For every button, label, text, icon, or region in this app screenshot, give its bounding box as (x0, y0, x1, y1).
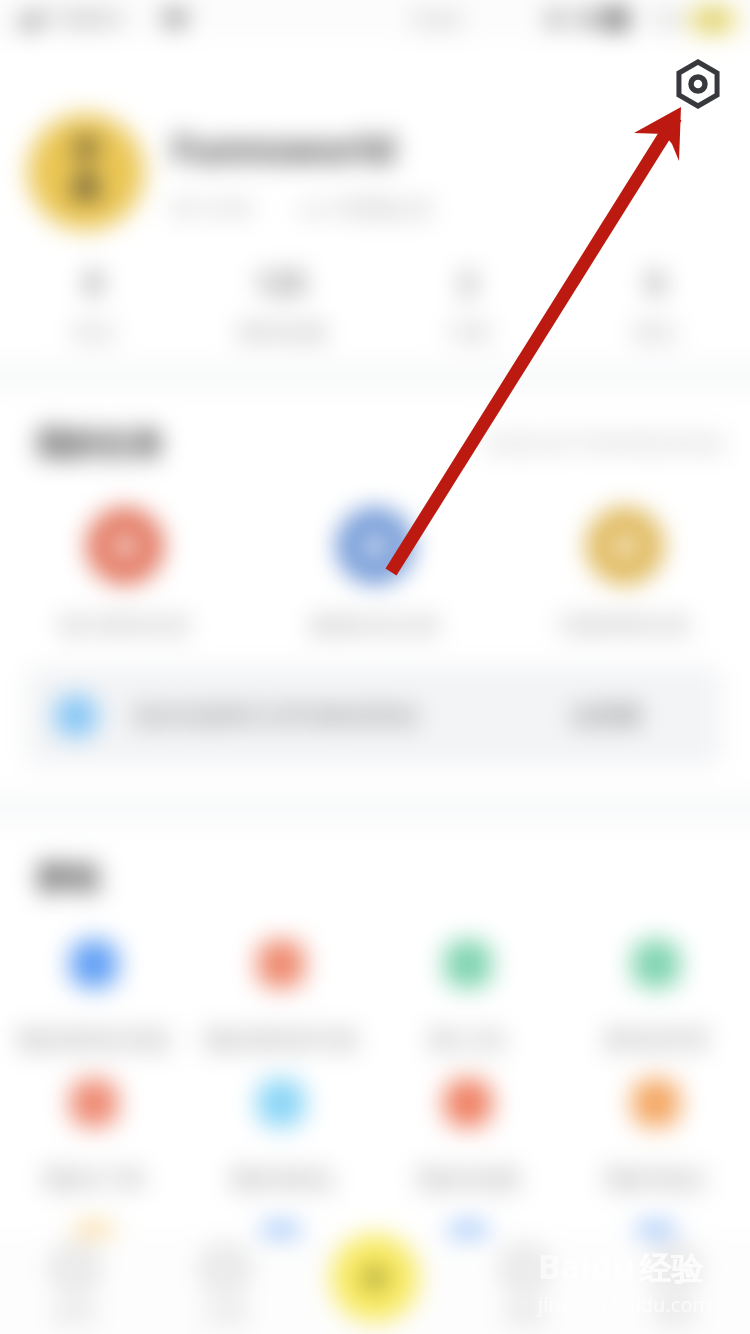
staticText: 我的优惠 (416, 1163, 520, 1196)
button[interactable]: 我的 (600, 1248, 750, 1328)
staticText: 群公告 (429, 1024, 507, 1057)
staticText: Baidu (538, 1243, 635, 1289)
staticText: 意见反馈 (416, 1308, 520, 1334)
staticText: 邀请好友任务 (309, 612, 441, 640)
staticText: 56% (652, 7, 688, 32)
staticText: 8 (85, 262, 103, 303)
button[interactable]: 每日签到任务 (0, 508, 250, 640)
staticText: 群组 (36, 858, 100, 898)
staticText: Funnsworld (172, 122, 395, 174)
staticText: 完善资料任务 (559, 612, 691, 640)
staticText: 帮助中心 (229, 1308, 333, 1334)
staticText: 中国移动 (50, 8, 122, 31)
button[interactable]: 关于我们 (562, 1224, 750, 1334)
button[interactable]: 分类 (150, 1248, 300, 1328)
staticText: 群组管理 (604, 1024, 708, 1057)
button[interactable]: 消息 (450, 1248, 600, 1328)
staticText: jingyan.baidu.com (538, 1291, 712, 1318)
button[interactable]: 我的群组列表 (187, 940, 374, 1057)
staticText: 我的订单 (42, 1163, 146, 1196)
button[interactable]: 8 (0, 262, 187, 347)
staticText: 2 (459, 262, 477, 303)
staticText: 关于我们 (604, 1308, 708, 1334)
button[interactable]: Settings (660, 54, 724, 118)
staticText: 您的优惠券已经到账请查收 (132, 701, 420, 731)
staticText: 我的群组列表 (203, 1024, 359, 1057)
staticText: 我的 (653, 1300, 697, 1328)
button[interactable]: 您的优惠券已经到账请查收 (26, 666, 722, 766)
button[interactable]: 邀请好友任务 (250, 508, 500, 640)
staticText: 125 (255, 262, 307, 303)
staticText: 我的群组消息 (16, 1024, 172, 1057)
button[interactable]: 我的钱包 (187, 1079, 374, 1196)
button[interactable]: 群公告 (374, 940, 562, 1057)
staticText: 去查看 (570, 701, 642, 731)
button[interactable]: 125 (187, 262, 374, 347)
button[interactable]: 设置中心 (0, 1224, 187, 1334)
button[interactable]: 我的订单 (0, 1079, 187, 1196)
button[interactable]: 首页 (0, 1248, 150, 1328)
staticText: 我的钱包 (229, 1163, 333, 1196)
button[interactable]: 帮助中心 (187, 1224, 374, 1334)
button[interactable]: 群组管理 (562, 940, 750, 1057)
staticText: 我的地址 (604, 1163, 708, 1196)
staticText: 我的任务 (36, 424, 164, 464)
button[interactable]: Publish (331, 1234, 419, 1322)
button[interactable]: 完善资料任务 (500, 508, 750, 640)
staticText: 经验 (639, 1249, 703, 1289)
staticText: 完成任务可获得更多奖励 (482, 430, 724, 458)
button[interactable]: 意见反馈 (374, 1224, 562, 1334)
staticText: Lv.4 普通会员 (298, 192, 433, 222)
staticText: 0 (647, 262, 665, 303)
button[interactable]: 我的地址 (562, 1079, 750, 1196)
button[interactable]: 0 (562, 262, 750, 347)
staticText: 设置中心 (42, 1308, 146, 1334)
button[interactable]: 2 (374, 262, 562, 347)
button[interactable]: 我的群组消息 (0, 940, 187, 1057)
button[interactable]: 我的优惠 (374, 1079, 562, 1196)
